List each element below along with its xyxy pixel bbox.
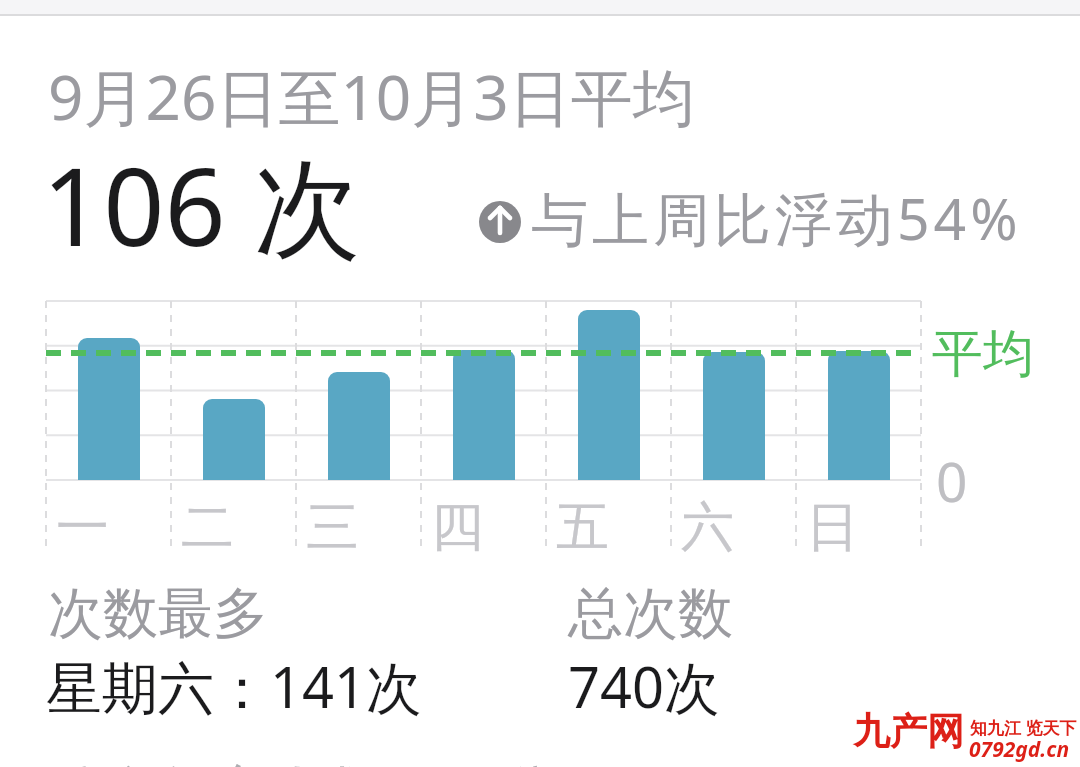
staticText: 五 bbox=[556, 494, 609, 561]
staticText: 次数最多 bbox=[48, 579, 268, 648]
staticText: 0792gd.cn bbox=[969, 735, 1070, 764]
staticText: 三 bbox=[306, 494, 359, 561]
staticText: 106 次 bbox=[42, 132, 361, 278]
staticText: 日 bbox=[806, 494, 859, 561]
staticText: 0 bbox=[936, 443, 968, 518]
staticText: 二 bbox=[181, 494, 234, 561]
staticText: 与上周比浮动54% bbox=[531, 179, 1022, 257]
staticText: 一 bbox=[56, 494, 109, 561]
staticText: 知九江 览天下 bbox=[970, 716, 1077, 739]
staticText: 九产网 bbox=[853, 708, 964, 755]
staticText: 740次 bbox=[568, 648, 721, 724]
staticText: 星期六：141次 bbox=[46, 648, 423, 724]
staticText: 9月26日至10月3日平均 bbox=[48, 54, 695, 139]
staticText: 六 bbox=[681, 494, 734, 561]
staticText: 四 bbox=[431, 494, 484, 561]
staticText: 总次数 bbox=[568, 579, 733, 648]
staticText: 平均 bbox=[932, 322, 1034, 386]
staticText: 蹬自行车次数：10分 bbox=[46, 751, 559, 767]
